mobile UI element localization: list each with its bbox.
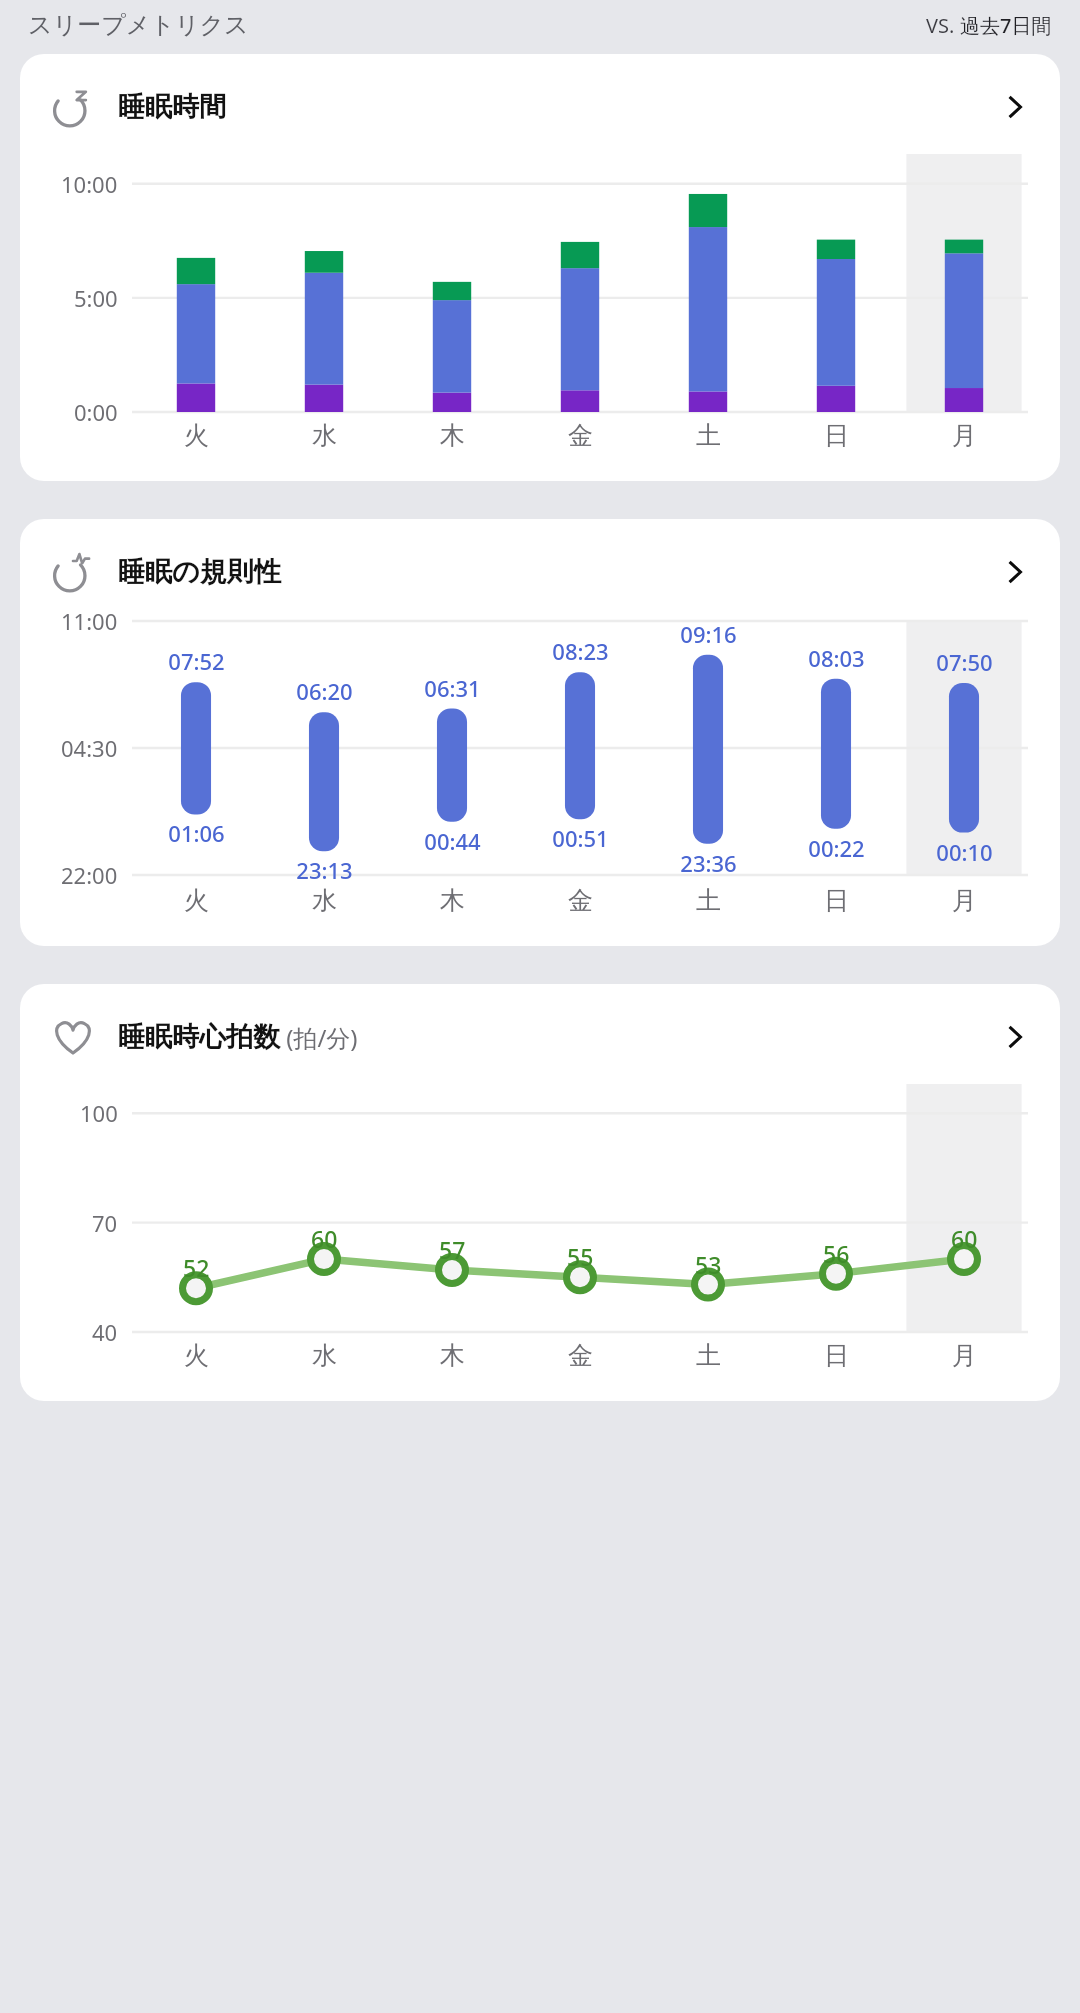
staticText: 月: [952, 885, 977, 916]
staticText: 04:30: [61, 733, 118, 763]
staticText: 07:52: [168, 646, 225, 676]
staticText: 60: [311, 1223, 338, 1254]
staticText: 土: [696, 885, 721, 916]
staticText: 08:03: [808, 643, 865, 673]
staticText: 金: [568, 1340, 593, 1371]
staticText: 日: [824, 420, 849, 451]
staticText: 木: [440, 1340, 465, 1371]
staticText: 水: [312, 885, 337, 916]
staticText: 23:13: [296, 855, 353, 885]
staticText: 100: [80, 1098, 118, 1128]
button[interactable]: 睡眠の規則性: [20, 519, 1060, 603]
staticText: 睡眠時間: [118, 90, 226, 124]
staticText: 5:00: [74, 283, 118, 313]
staticText: 01:06: [168, 818, 225, 848]
staticText: 70: [92, 1208, 118, 1238]
staticText: 10:00: [61, 169, 118, 199]
staticText: 金: [568, 885, 593, 916]
staticText: 07:50: [936, 647, 993, 677]
staticText: 日: [824, 1340, 849, 1371]
staticText: 火: [184, 1340, 209, 1371]
staticText: 55: [567, 1241, 594, 1272]
staticText: スリープメトリクス: [28, 10, 249, 40]
staticText: 日: [824, 885, 849, 916]
staticText: VS.: [926, 12, 960, 39]
staticText: 11:00: [61, 606, 118, 636]
staticText: 56: [823, 1238, 850, 1269]
other: 睡眠の規則性の詳細: [994, 552, 1034, 592]
staticText: 57: [439, 1234, 466, 1265]
staticText: 23:36: [680, 848, 737, 878]
staticText: 06:31: [424, 673, 481, 703]
staticText: 00:22: [808, 833, 865, 863]
staticText: 火: [184, 885, 209, 916]
staticText: 53: [695, 1249, 722, 1280]
button[interactable]: 睡眠時間: [20, 54, 1060, 138]
staticText: 金: [568, 420, 593, 451]
staticText: 木: [440, 885, 465, 916]
staticText: 00:10: [936, 837, 993, 867]
staticText: 52: [183, 1252, 210, 1283]
staticText: 月: [952, 1340, 977, 1371]
staticText: 08:23: [552, 636, 609, 666]
staticText: 睡眠時心拍数: [118, 1020, 280, 1054]
staticText: 水: [312, 420, 337, 451]
staticText: 月: [952, 420, 977, 451]
other: 睡眠時間の詳細: [994, 87, 1034, 127]
staticText: 09:16: [680, 619, 737, 649]
staticText: 火: [184, 420, 209, 451]
staticText: 水: [312, 1340, 337, 1371]
staticText: 睡眠の規則性: [118, 555, 281, 589]
staticText: 40: [92, 1317, 118, 1347]
staticText: 0:00: [74, 397, 118, 427]
staticText: 00:51: [552, 823, 609, 853]
staticText: 木: [440, 420, 465, 451]
staticText: 過去7日間: [960, 12, 1052, 39]
staticText: 土: [696, 420, 721, 451]
staticText: (拍/分): [280, 1021, 358, 1054]
staticText: 60: [951, 1223, 978, 1254]
button[interactable]: 睡眠時心拍数: [20, 984, 1060, 1068]
other: 睡眠時心拍数の詳細: [994, 1017, 1034, 1057]
staticText: 06:20: [296, 676, 353, 706]
staticText: 22:00: [61, 860, 118, 890]
staticText: 土: [696, 1340, 721, 1371]
staticText: 00:44: [424, 826, 481, 856]
